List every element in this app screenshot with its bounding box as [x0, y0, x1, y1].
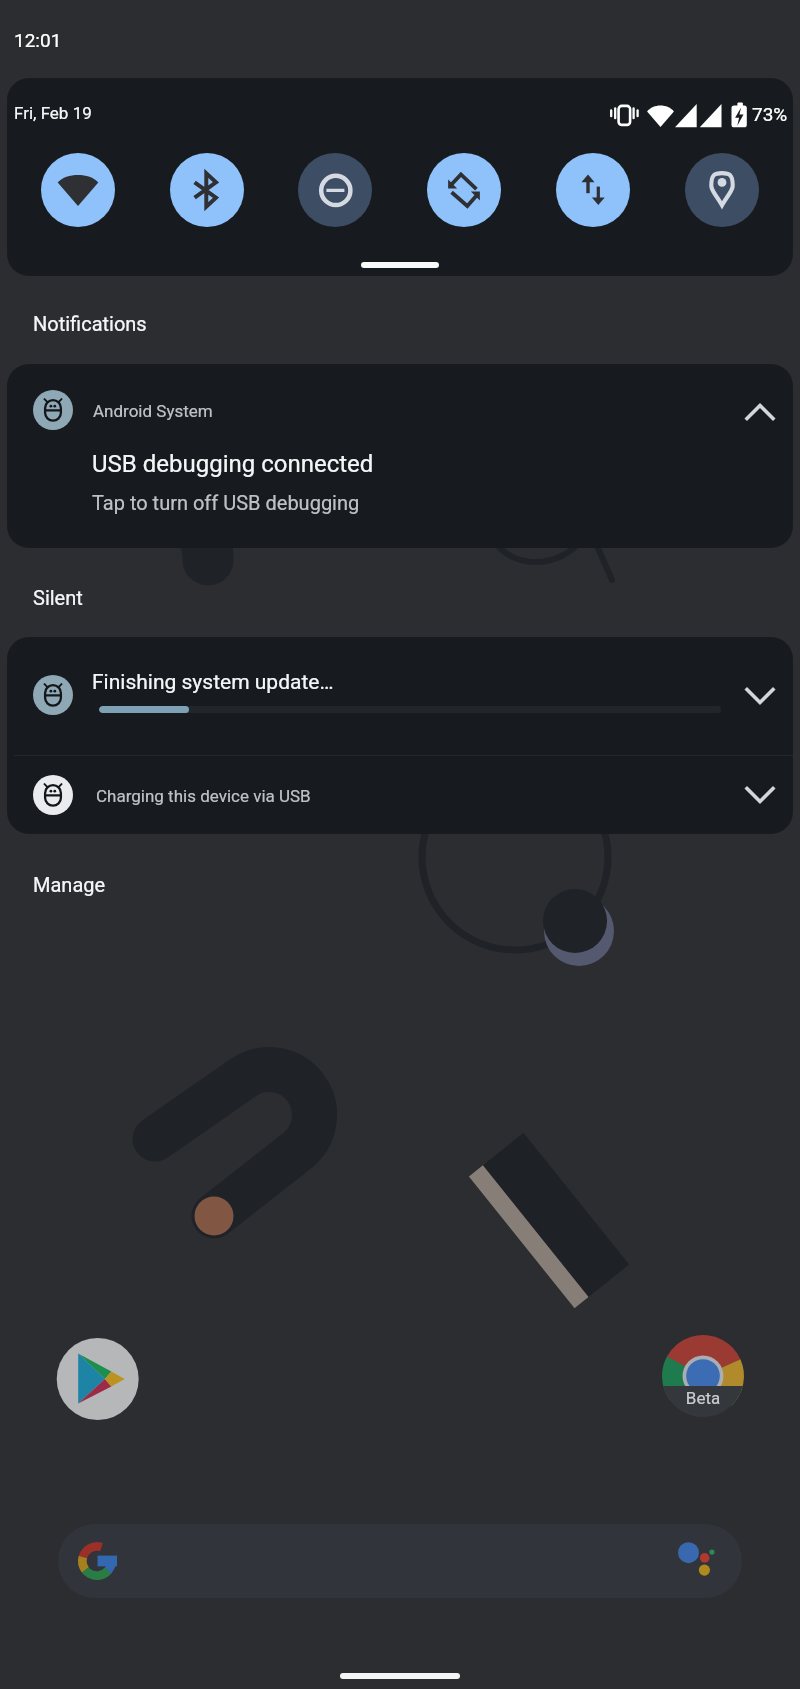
button[interactable]: Android System — [7, 364, 793, 548]
button[interactable]: Collapse notification — [732, 384, 788, 440]
button[interactable]: Quick setting toggle — [427, 153, 501, 227]
button[interactable]: Finishing system update… — [7, 637, 793, 755]
button[interactable]: Quick setting toggle — [298, 153, 372, 227]
button[interactable]: Quick setting toggle — [170, 153, 244, 227]
staticText: Beta — [680, 1388, 726, 1408]
button[interactable]: Quick setting toggle — [41, 153, 115, 227]
staticText: Charging this device via USB — [96, 786, 311, 806]
button[interactable]: Quick setting toggle — [556, 153, 630, 227]
staticText: USB debugging connected — [92, 450, 374, 478]
staticText: Tap to turn off USB debugging — [92, 491, 360, 514]
staticText: Notifications — [33, 312, 147, 335]
staticText: Fri, Feb 19 — [14, 103, 92, 123]
button[interactable]: Manage — [33, 873, 106, 896]
button[interactable]: Expand notification — [732, 668, 788, 724]
staticText: 12:01 — [14, 29, 62, 51]
button[interactable]: Expand notification — [732, 767, 788, 823]
button[interactable]: Quick setting toggle — [685, 153, 759, 227]
staticText: 73% — [752, 103, 788, 125]
staticText: Silent — [33, 586, 83, 609]
button[interactable]: Charging this device via USB — [7, 756, 793, 834]
staticText: Finishing system update… — [92, 670, 334, 695]
staticText: Android System — [93, 401, 213, 421]
